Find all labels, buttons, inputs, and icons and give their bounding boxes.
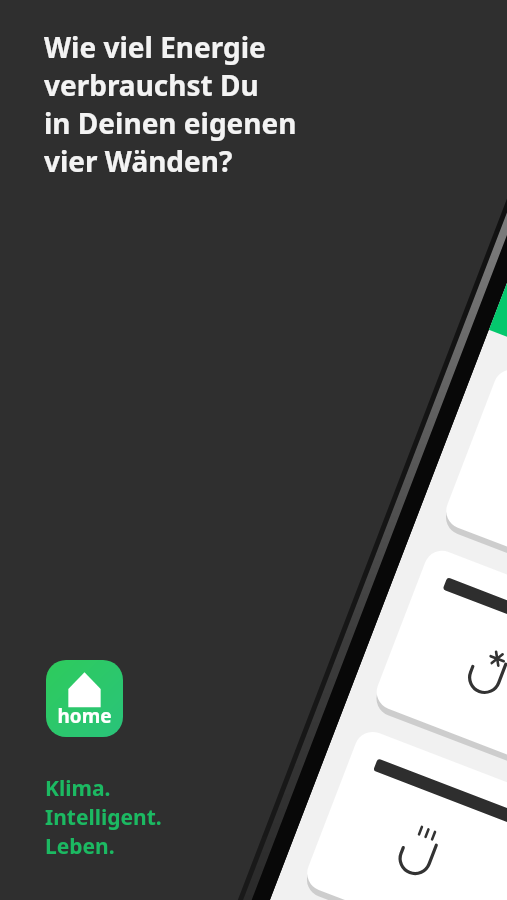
staticText: Klima. [45,774,111,803]
staticText: home [57,703,112,729]
staticText: in Deinen eigenen [44,104,297,142]
staticText: Intelligent. [45,803,162,832]
staticText: Leben. [45,832,115,861]
staticText: vier Wänden? [44,142,233,180]
staticText: verbrauchst Du [44,66,259,104]
button[interactable]: home logo [46,660,123,737]
staticText: Wie viel Energie [44,28,266,66]
